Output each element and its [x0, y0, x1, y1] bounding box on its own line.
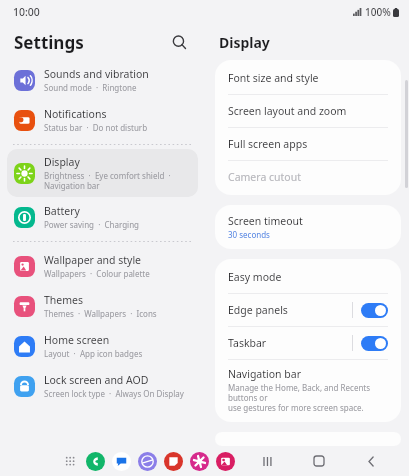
- staticText: Screen layout and zoom: [228, 104, 347, 118]
- button[interactable]: Taskbar: [215, 327, 401, 359]
- staticText: Lock screen and AOD: [44, 373, 149, 387]
- staticText: Brightness · Eye comfort shield · Naviga…: [44, 170, 171, 191]
- button[interactable]: Messages: [112, 452, 131, 471]
- button[interactable]: Screen layout and zoom: [215, 95, 401, 127]
- staticText: Font size and style: [228, 71, 319, 85]
- staticText: Power saving · Charging: [44, 219, 140, 230]
- button[interactable]: Edge panels toggle: [361, 303, 388, 318]
- staticText: Themes · Wallpapers · Icons: [44, 308, 157, 319]
- staticText: Easy mode: [228, 270, 282, 284]
- staticText: Edge panels: [228, 303, 288, 317]
- staticText: Display: [219, 33, 270, 52]
- staticText: Battery: [44, 204, 80, 218]
- staticText: Manage the Home, Back, and Recents butto…: [228, 382, 388, 413]
- button[interactable]: Wallpaper and style: [7, 246, 198, 286]
- button[interactable]: Home screen: [7, 326, 198, 366]
- staticText: Navigation bar: [228, 367, 302, 381]
- staticText: Display: [44, 155, 80, 169]
- button[interactable]: Battery: [7, 197, 198, 237]
- staticText: Home screen: [44, 333, 110, 347]
- staticText: Screen lock type · Always On Display: [44, 388, 184, 399]
- button[interactable]: Galaxy Store: [190, 452, 209, 471]
- staticText: Camera cutout: [228, 170, 301, 184]
- button[interactable]: All apps: [60, 451, 80, 471]
- button[interactable]: Back: [355, 450, 387, 472]
- staticText: Taskbar: [228, 336, 267, 350]
- button[interactable]: Lock screen and AOD: [7, 366, 198, 406]
- button[interactable]: Easy mode: [215, 261, 401, 293]
- staticText: Themes: [44, 293, 84, 307]
- staticText: Wallpapers · Colour palette: [44, 268, 150, 279]
- button[interactable]: Internet: [138, 452, 157, 471]
- button[interactable]: Notifications: [7, 100, 198, 140]
- staticText: Layout · App icon badges: [44, 348, 143, 359]
- staticText: Status bar · Do not disturb: [44, 122, 148, 133]
- button[interactable]: Edge panels: [215, 294, 401, 326]
- button[interactable]: Screen timeout: [215, 207, 401, 247]
- button[interactable]: Taskbar toggle: [361, 336, 388, 351]
- staticText: 30 seconds: [228, 229, 270, 240]
- button[interactable]: Search: [165, 28, 193, 56]
- button[interactable]: Gallery: [216, 452, 235, 471]
- staticText: Wallpaper and style: [44, 253, 142, 267]
- button[interactable]: Phone: [86, 452, 105, 471]
- staticText: Sounds and vibration: [44, 67, 149, 81]
- button[interactable]: Home: [303, 450, 335, 472]
- button[interactable]: My Files: [164, 452, 183, 471]
- button[interactable]: Recents: [251, 450, 283, 472]
- staticText: Screen timeout: [228, 214, 303, 228]
- button[interactable]: Full screen apps: [215, 128, 401, 160]
- button[interactable]: Navigation bar: [215, 360, 401, 420]
- button[interactable]: Themes: [7, 286, 198, 326]
- button[interactable]: Camera cutout: [215, 161, 401, 193]
- staticText: Full screen apps: [228, 137, 308, 151]
- button[interactable]: Sounds and vibration: [7, 60, 198, 100]
- button[interactable]: Font size and style: [215, 62, 401, 94]
- staticText: 100%: [365, 5, 391, 19]
- staticText: Notifications: [44, 107, 107, 121]
- button[interactable]: Display: [7, 149, 198, 197]
- staticText: Settings: [14, 31, 84, 54]
- staticText: Sound mode · Ringtone: [44, 82, 137, 93]
- staticText: 10:00: [13, 5, 40, 19]
